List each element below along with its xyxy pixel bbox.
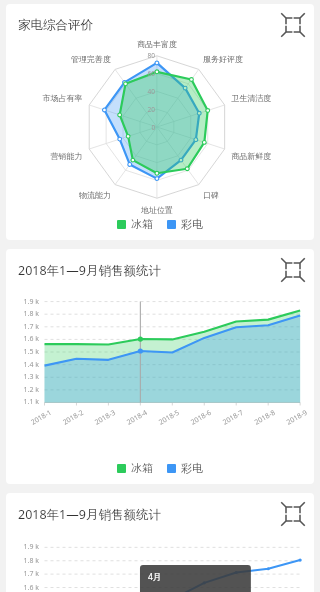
button[interactable]: 彩电 [167, 461, 203, 475]
staticText: 家电综合评价 [18, 17, 93, 33]
button[interactable]: 家电综合评价 [6, 4, 314, 240]
button[interactable]: Expand chart [282, 14, 304, 36]
staticText: 冰箱 [131, 461, 153, 475]
button[interactable]: 彩电 [167, 217, 203, 231]
staticText: 彩电 [181, 461, 203, 475]
staticText: 冰箱 [131, 217, 153, 231]
button[interactable]: 冰箱 [117, 461, 153, 475]
button[interactable]: 2018年1—9月销售额统计 [6, 249, 314, 484]
staticText: 彩电 [181, 217, 203, 231]
button[interactable]: 2018年1—9月销售额统计 [6, 493, 314, 592]
button[interactable]: Expand chart [282, 503, 304, 525]
button[interactable]: 冰箱 [117, 217, 153, 231]
staticText: 2018年1—9月销售额统计 [18, 506, 161, 523]
staticText: 2018年1—9月销售额统计 [18, 262, 161, 279]
button[interactable]: Expand chart [282, 259, 304, 281]
